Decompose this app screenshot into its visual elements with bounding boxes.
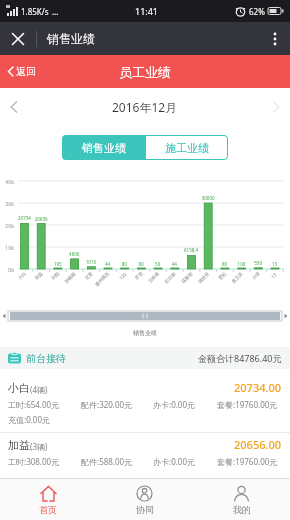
staticText: 1.85K/s — [21, 6, 49, 17]
staticText: 20656.00 — [234, 437, 282, 452]
staticText: 办卡:0.00元 — [153, 399, 196, 410]
staticText: 前台接待 — [26, 352, 66, 365]
staticText: 首页 — [39, 504, 57, 515]
staticText: 我的 — [233, 504, 251, 515]
staticText: 62% — [249, 6, 265, 17]
staticText: 协同 — [136, 504, 154, 515]
staticText: 返回 — [16, 65, 36, 78]
button[interactable]: 施工业绩 — [145, 135, 228, 160]
staticText: (3辆) — [30, 441, 48, 452]
button[interactable]: 销售业绩 — [62, 135, 145, 160]
button[interactable]: 小白 — [8, 380, 282, 395]
staticText: 小白 — [8, 381, 30, 395]
staticText: 工时:308.00元 — [8, 456, 60, 467]
staticText: 充值:0.00元 — [8, 414, 51, 425]
staticText: 办卡:0.00元 — [153, 456, 196, 467]
staticText: 施工业绩 — [165, 141, 209, 155]
staticText: … — [52, 6, 59, 17]
staticText: 金额合计84786.40元 — [198, 352, 282, 364]
button[interactable]: 返回 — [7, 65, 36, 78]
button[interactable]: 我的 — [193, 479, 290, 520]
button[interactable]: 加益 — [8, 437, 282, 452]
staticText: (4辆) — [30, 384, 48, 395]
button[interactable]: 首页 — [0, 479, 96, 520]
staticText: 工时:654.00元 — [8, 399, 60, 410]
staticText: 套餐:19760.00元 — [217, 399, 278, 410]
staticText: 加益 — [8, 438, 30, 452]
button[interactable] — [260, 22, 290, 55]
staticText: 套餐:19760.00元 — [217, 456, 278, 467]
staticText: 销售业绩 — [82, 141, 126, 155]
button[interactable] — [0, 22, 36, 55]
staticText: 销售业绩 — [47, 31, 95, 46]
staticText: 配件:588.00元 — [81, 456, 133, 467]
staticText: 11:41 — [135, 5, 159, 17]
staticText: 2016年12月 — [112, 99, 178, 115]
staticText: 配件:320.00元 — [81, 399, 133, 410]
staticText: 20734.00 — [234, 380, 282, 395]
staticText: 员工业绩 — [119, 64, 171, 80]
button[interactable]: 协同 — [96, 479, 193, 520]
